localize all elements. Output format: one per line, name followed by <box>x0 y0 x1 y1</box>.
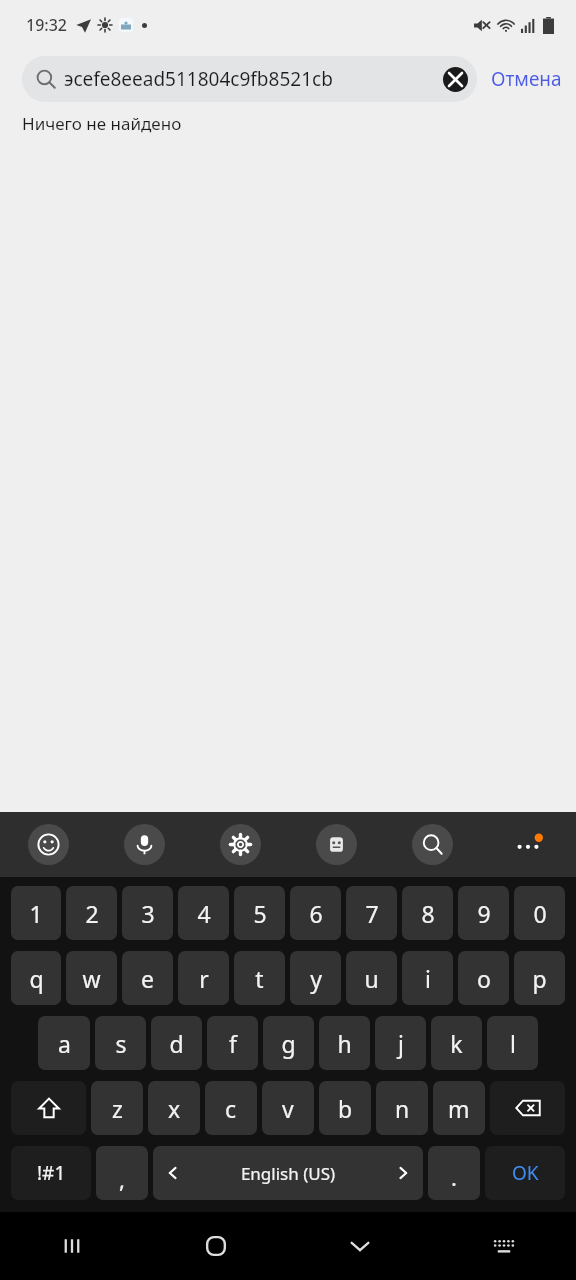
staticText: f <box>229 1028 237 1059</box>
button[interactable]: v <box>262 1081 314 1135</box>
button[interactable]: Recents <box>0 1212 144 1280</box>
button[interactable]: q <box>11 951 61 1005</box>
button[interactable]: Clear text <box>433 57 477 101</box>
button[interactable]: 5 <box>234 886 285 940</box>
button[interactable]: k <box>431 1016 482 1070</box>
button[interactable]: эcefe8eead511804c9fb8521cb <box>22 56 477 102</box>
button[interactable]: t <box>234 951 285 1005</box>
staticText: q <box>29 963 44 994</box>
button[interactable]: f <box>207 1016 258 1070</box>
button[interactable]: 3 <box>122 886 173 940</box>
button[interactable]: Отмена <box>477 66 576 92</box>
button[interactable]: Stickers <box>316 824 357 865</box>
button[interactable]: 1 <box>11 886 61 940</box>
staticText: 7 <box>365 898 379 929</box>
button[interactable]: Previous language <box>153 1146 423 1200</box>
staticText: y <box>310 963 322 994</box>
staticText: w <box>82 963 101 994</box>
button[interactable]: 2 <box>66 886 117 940</box>
staticText: p <box>532 963 547 994</box>
staticText: u <box>364 963 379 994</box>
staticText: 2 <box>85 898 99 929</box>
staticText: g <box>281 1028 296 1059</box>
staticText: r <box>199 963 209 994</box>
staticText: a <box>58 1028 71 1059</box>
staticText: 8 <box>421 898 435 929</box>
button[interactable]: 0 <box>514 886 565 940</box>
staticText: Ничего не найдено <box>22 112 182 135</box>
staticText: 6 <box>309 898 323 929</box>
button[interactable]: x <box>148 1081 200 1135</box>
button[interactable]: Hide keyboard <box>288 1212 432 1280</box>
button[interactable]: Shift <box>11 1081 86 1135</box>
button[interactable]: 9 <box>458 886 509 940</box>
button[interactable]: s <box>95 1016 146 1070</box>
button[interactable]: Home <box>144 1212 288 1280</box>
button[interactable]: , <box>96 1146 148 1200</box>
staticText: k <box>450 1028 463 1059</box>
button[interactable]: b <box>319 1081 371 1135</box>
staticText: e <box>141 963 154 994</box>
staticText: English (US) <box>193 1162 383 1185</box>
staticText: s <box>115 1028 127 1059</box>
button[interactable]: 7 <box>346 886 397 940</box>
button[interactable]: h <box>319 1016 370 1070</box>
button[interactable]: z <box>91 1081 143 1135</box>
button[interactable]: Search <box>412 824 453 865</box>
button[interactable]: More options <box>480 812 576 877</box>
button[interactable]: e <box>122 951 173 1005</box>
staticText: !#1 <box>37 1160 66 1186</box>
button[interactable]: l <box>487 1016 538 1070</box>
button[interactable]: Next language <box>383 1146 423 1200</box>
staticText: v <box>282 1093 294 1124</box>
button[interactable]: Change keyboard <box>432 1212 576 1280</box>
button[interactable]: d <box>151 1016 202 1070</box>
button[interactable]: u <box>346 951 397 1005</box>
staticText: Отмена <box>491 66 562 92</box>
button[interactable]: Voice input <box>124 824 165 865</box>
button[interactable]: Previous language <box>153 1146 193 1200</box>
button[interactable]: n <box>376 1081 428 1135</box>
staticText: l <box>510 1028 516 1059</box>
button[interactable]: Settings <box>220 824 261 865</box>
staticText: 0 <box>533 898 547 929</box>
staticText: z <box>112 1093 123 1124</box>
button[interactable]: p <box>514 951 565 1005</box>
staticText: 1 <box>29 898 43 929</box>
button[interactable]: c <box>205 1081 257 1135</box>
staticText: t <box>255 963 264 994</box>
staticText: эcefe8eead511804c9fb8521cb <box>64 66 433 92</box>
button[interactable]: i <box>402 951 453 1005</box>
button[interactable]: Emoji <box>28 824 69 865</box>
button[interactable]: Backspace <box>490 1081 565 1135</box>
staticText: 4 <box>197 898 211 929</box>
staticText: d <box>169 1028 184 1059</box>
button[interactable]: . <box>428 1146 480 1200</box>
button[interactable]: 4 <box>178 886 229 940</box>
staticText: j <box>398 1028 404 1059</box>
button[interactable]: 6 <box>290 886 341 940</box>
staticText: 9 <box>477 898 491 929</box>
staticText: . <box>451 1162 457 1192</box>
button[interactable]: OK <box>485 1146 565 1200</box>
button[interactable]: !#1 <box>11 1146 91 1200</box>
button[interactable]: g <box>263 1016 314 1070</box>
button[interactable]: 8 <box>402 886 453 940</box>
staticText: b <box>338 1093 353 1124</box>
staticText: 5 <box>253 898 267 929</box>
button[interactable]: w <box>66 951 117 1005</box>
button[interactable]: y <box>290 951 341 1005</box>
staticText: n <box>395 1093 410 1124</box>
staticText: m <box>448 1093 470 1124</box>
staticText: c <box>225 1093 237 1124</box>
staticText: x <box>168 1093 181 1124</box>
staticText: 3 <box>141 898 155 929</box>
button[interactable]: o <box>458 951 509 1005</box>
button[interactable]: j <box>375 1016 426 1070</box>
staticText: 19:32 <box>26 14 67 36</box>
staticText: , <box>119 1164 125 1194</box>
button[interactable]: a <box>38 1016 90 1070</box>
button[interactable]: r <box>178 951 229 1005</box>
button[interactable]: m <box>433 1081 485 1135</box>
staticText: h <box>337 1028 352 1059</box>
